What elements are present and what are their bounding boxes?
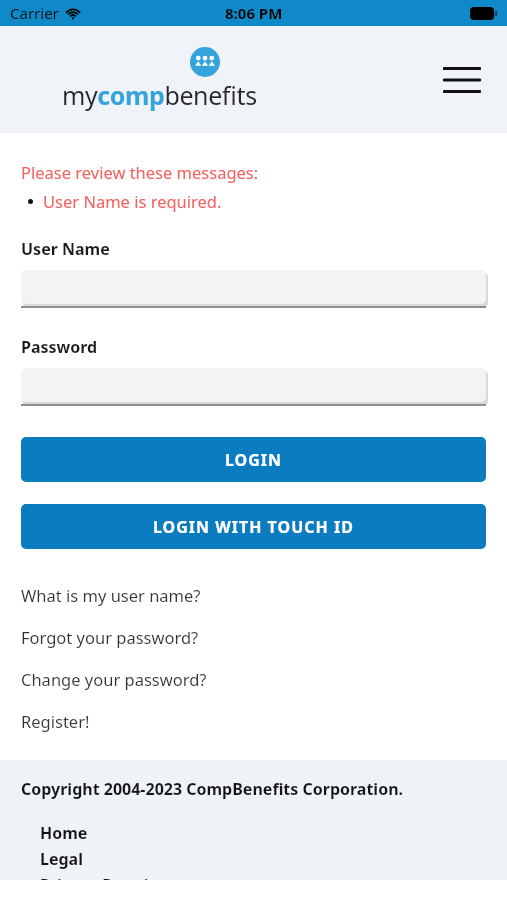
button[interactable]: Privacy Practices	[40, 874, 507, 880]
button[interactable]: Register!	[21, 710, 507, 732]
staticText: User Name	[21, 238, 110, 260]
staticText: LOGIN	[225, 449, 283, 471]
staticText: Password	[21, 336, 98, 358]
staticText: Privacy Practices	[40, 874, 175, 880]
staticText: LOGIN WITH TOUCH ID	[153, 516, 354, 538]
button[interactable]: Forgot your password?	[21, 626, 507, 648]
staticText: What is my user name?	[21, 584, 201, 606]
staticText: Forgot your password?	[21, 626, 199, 648]
staticText: Register!	[21, 710, 90, 732]
staticText: Copyright 2004-2023 CompBenefits Corpora…	[21, 778, 404, 800]
staticText: Carrier	[10, 3, 59, 23]
button[interactable]: Menu	[437, 59, 487, 101]
staticText: Legal	[40, 848, 83, 870]
button[interactable]: What is my user name?	[21, 584, 507, 606]
staticText: Home	[40, 822, 88, 844]
button[interactable]: LOGIN	[21, 437, 486, 482]
button[interactable]: Legal	[40, 848, 507, 870]
button[interactable]: Change your password?	[21, 668, 507, 690]
staticText: User Name is required.	[43, 190, 222, 212]
staticText: Change your password?	[21, 668, 207, 690]
button[interactable]: User Name input	[21, 270, 486, 308]
button[interactable]: Password input	[21, 368, 486, 406]
button[interactable]: Home	[40, 822, 507, 844]
button[interactable]: mycompbenefits home	[62, 47, 257, 112]
button[interactable]: LOGIN WITH TOUCH ID	[21, 504, 486, 549]
staticText: 8:06 PM	[225, 3, 283, 23]
staticText: Please review these messages:	[21, 161, 259, 183]
staticText: mycompbenefits	[62, 78, 257, 112]
